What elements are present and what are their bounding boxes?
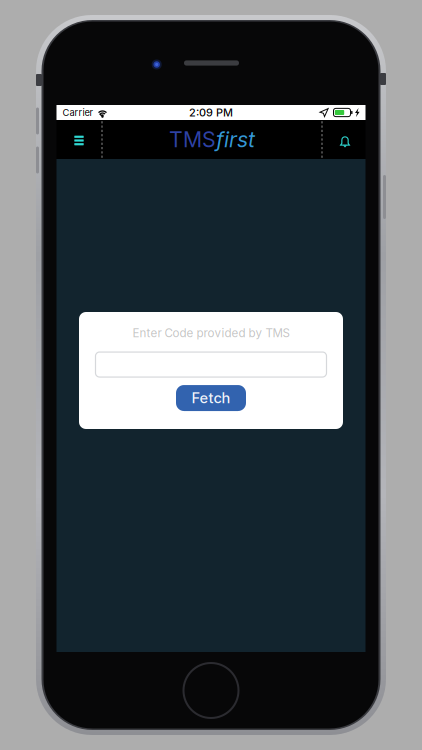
staticText: 2:09 PM <box>189 106 233 119</box>
staticText: first <box>216 127 255 152</box>
staticText: TMS <box>169 127 216 152</box>
staticText: Carrier <box>62 107 93 118</box>
button[interactable]: Notifications <box>322 120 365 159</box>
button[interactable]: Fetch <box>176 385 246 411</box>
staticText: Enter Code provided by TMS <box>132 326 289 340</box>
button[interactable]: Menu <box>56 120 101 159</box>
staticText: Fetch <box>191 389 230 407</box>
